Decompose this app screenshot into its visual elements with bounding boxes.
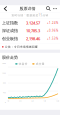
staticText: 2,198.46 (26, 36, 40, 41)
staticText: 12月 (56, 100, 59, 102)
staticText: 成交量 (36, 62, 45, 66)
staticText: 股价走势 (2, 55, 18, 60)
staticText: 1月 (7, 100, 9, 102)
staticText: 上证指数 (2, 20, 18, 25)
staticText: 3,124.57 (26, 20, 40, 25)
staticText: +1.53% (47, 37, 58, 40)
staticText: 0 (5, 102, 6, 103)
staticText: 6月 (31, 100, 33, 102)
staticText: 公告：今日市场情绪回暖 (5, 45, 38, 48)
staticText: 1200 (2, 72, 6, 74)
button[interactable]: More (51, 5, 58, 12)
staticText: +1.24% (47, 21, 58, 25)
button[interactable]: Search (45, 5, 51, 12)
staticText: 创业板指 (2, 36, 18, 41)
staticText: +0.96% (47, 29, 58, 32)
staticText: 10,785.3 (26, 28, 40, 33)
button[interactable]: Back (1, 5, 9, 12)
staticText: 实时行情 · 数据延迟15分钟 (11, 13, 48, 17)
staticText: 1600 (2, 63, 6, 64)
staticText: 股票详情 (19, 6, 35, 11)
staticText: 3月 (19, 100, 21, 102)
staticText: 深证成指 (2, 28, 18, 33)
staticText: 400 (3, 92, 6, 94)
staticText: 9月 (44, 100, 46, 102)
staticText: 收盘价 (19, 62, 28, 66)
